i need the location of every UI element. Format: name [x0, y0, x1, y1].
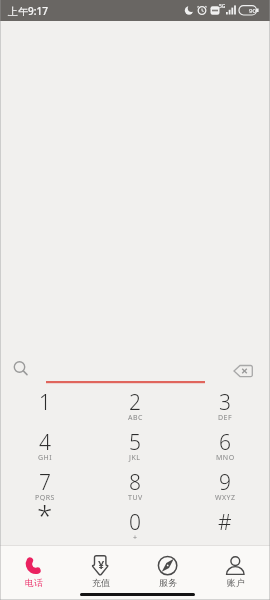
button[interactable]: 6	[180, 422, 270, 462]
staticText: TUV	[128, 493, 143, 503]
staticText: 5G	[219, 3, 226, 10]
button[interactable]: 0	[90, 502, 180, 542]
staticText: 8	[129, 468, 141, 497]
button[interactable]: 5	[90, 422, 180, 462]
staticText: 0	[129, 508, 141, 537]
staticText: ABC	[128, 413, 143, 423]
staticText: #	[218, 508, 232, 537]
staticText: 电话	[25, 577, 43, 588]
button[interactable]: 服务	[134, 546, 202, 600]
button[interactable]: 1	[0, 382, 90, 422]
staticText: 9	[219, 468, 231, 497]
staticText: 充值	[92, 577, 110, 588]
staticText: JKL	[129, 453, 141, 463]
button[interactable]: *	[0, 502, 90, 542]
staticText: 5	[129, 428, 141, 457]
button[interactable]: 3	[180, 382, 270, 422]
staticText: ¥	[98, 557, 105, 572]
staticText: *	[37, 496, 53, 534]
button[interactable]: 账户	[202, 546, 270, 600]
staticText: 6	[219, 428, 231, 457]
button[interactable]: ¥	[67, 546, 134, 600]
staticText: 1	[39, 388, 51, 417]
staticText: 上午9:17	[8, 4, 48, 18]
staticText: DEF	[218, 413, 233, 423]
button[interactable]: 2	[90, 382, 180, 422]
staticText: 4	[39, 428, 51, 457]
staticText: WXYZ	[215, 493, 236, 503]
button[interactable]: 7	[0, 462, 90, 502]
button[interactable]: 8	[90, 462, 180, 502]
button[interactable]: #	[180, 502, 270, 542]
staticText: 3	[219, 388, 231, 417]
button[interactable]: 4	[0, 422, 90, 462]
staticText: MNO	[216, 453, 235, 463]
button[interactable]: 电话	[0, 546, 67, 600]
button[interactable]: 9	[180, 462, 270, 502]
staticText: 2	[129, 388, 141, 417]
staticText: +	[133, 533, 138, 543]
staticText: 90	[249, 7, 256, 15]
staticText: GHI	[38, 453, 53, 463]
staticText: PQRS	[35, 493, 55, 503]
staticText: 7	[39, 468, 51, 497]
staticText: 账户	[227, 577, 245, 588]
button[interactable]	[0, 352, 270, 384]
staticText: 服务	[159, 577, 177, 588]
